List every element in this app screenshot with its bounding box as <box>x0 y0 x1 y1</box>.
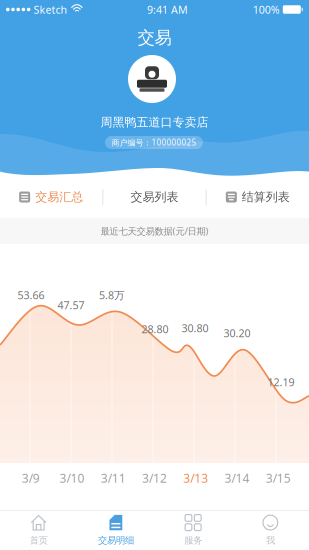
staticText: 12.19 <box>267 375 294 389</box>
staticText: 3/15 <box>266 470 291 486</box>
staticText: 5.8万 <box>99 288 125 302</box>
staticText: 交易明细 <box>98 535 134 546</box>
staticText: 交易汇总 <box>35 190 83 204</box>
button[interactable]: 我 <box>232 511 309 550</box>
staticText: 53.66 <box>17 288 44 302</box>
staticText: 商户编号：100000025 <box>111 137 196 148</box>
button[interactable]: 交易列表 <box>103 176 206 218</box>
staticText: 最近七天交易数据(元/日期) <box>100 225 208 237</box>
staticText: 30.20 <box>223 326 250 340</box>
staticText: 3/14 <box>225 470 250 486</box>
staticText: 3/13 <box>183 470 208 486</box>
staticText: 3/11 <box>101 470 126 486</box>
staticText: 首页 <box>30 535 48 546</box>
staticText: 3/10 <box>59 470 84 486</box>
staticText: 9:41 AM <box>147 2 188 17</box>
staticText: 3/9 <box>22 470 40 486</box>
staticText: 周黑鸭五道口专卖店 <box>100 115 208 130</box>
button[interactable]: 交易明细 <box>77 511 154 550</box>
staticText: 交易列表 <box>130 190 178 204</box>
staticText: 服务 <box>184 535 202 546</box>
button[interactable]: 服务 <box>154 511 232 550</box>
button[interactable]: 交易汇总 <box>0 176 102 218</box>
staticText: 交易 <box>137 27 171 48</box>
staticText: 100% <box>253 2 280 17</box>
staticText: Sketch <box>30 2 67 17</box>
staticText: 3/12 <box>142 470 167 486</box>
staticText: 结算列表 <box>242 190 290 204</box>
staticText: 47.57 <box>57 298 84 312</box>
staticText: 30.80 <box>181 321 208 335</box>
button[interactable]: 首页 <box>0 511 77 550</box>
staticText: 我 <box>266 535 275 546</box>
staticText: 28.80 <box>141 322 168 336</box>
button[interactable]: 结算列表 <box>207 176 309 218</box>
